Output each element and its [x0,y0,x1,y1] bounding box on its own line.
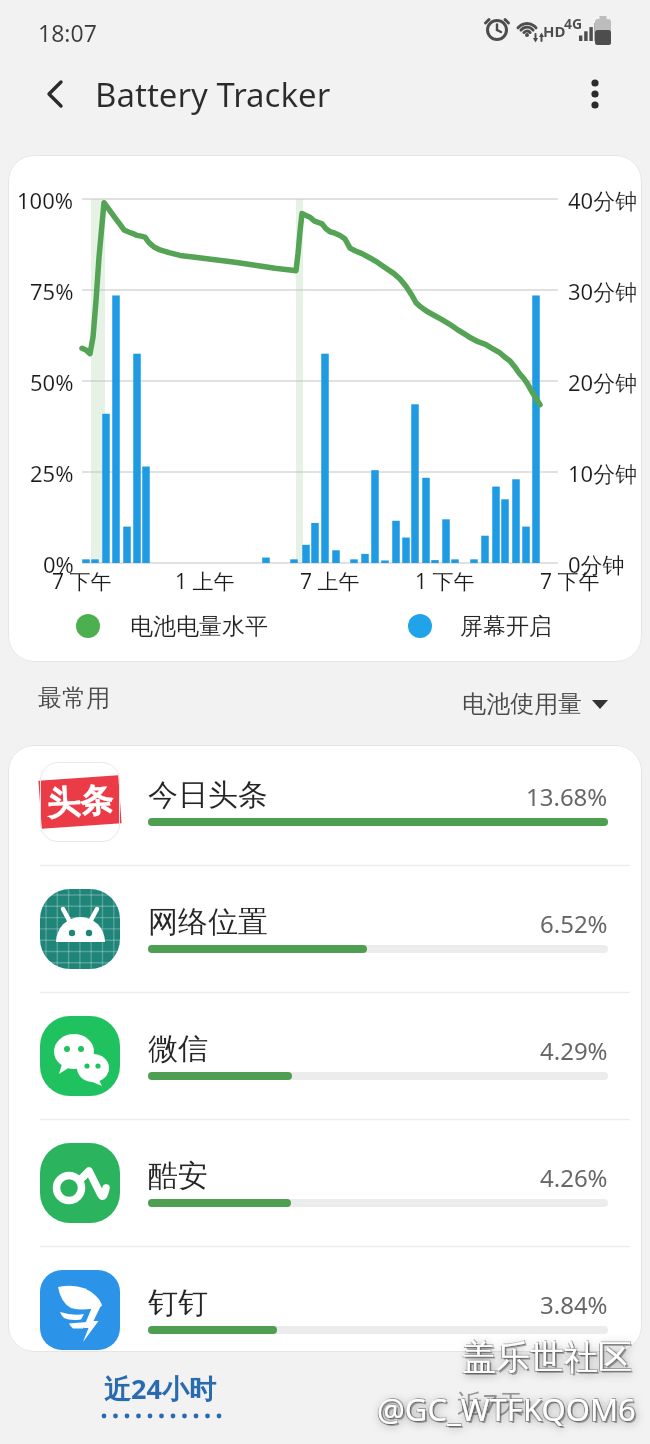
staticText: 4G [564,14,583,33]
staticText: @GC_WTFKQOM6 [378,1387,637,1429]
staticText: 今日头条 [148,776,268,814]
staticText: 0% [43,549,74,577]
staticText: 50% [30,367,74,395]
staticText: 屏幕开启 [460,612,552,641]
staticText: 7 下午 [52,567,112,595]
staticText: 4.29% [540,1034,608,1064]
staticText: 100% [17,185,74,213]
staticText: 盖乐世社区 [461,1337,631,1380]
button[interactable]: 近24小时 [90,1370,230,1436]
staticText: 7 上午 [300,567,360,595]
staticText: 酷安 [148,1157,208,1195]
staticText: 30分钟 [568,276,638,304]
staticText: 头条 [46,779,114,825]
staticText: 最常用 [38,683,110,713]
staticText: @GC_WTFKQOM6 [377,1388,636,1430]
staticText: @GC_WTFKQOM6 [376,1389,635,1431]
button[interactable] [8,1120,642,1246]
staticText: 电池使用量 [462,689,582,719]
staticText: 盖乐世社区 [463,1337,633,1380]
staticText: 75% [30,276,74,304]
button[interactable] [30,69,80,119]
staticText: 盖乐世社区 [462,1336,632,1379]
staticText: 10分钟 [568,458,638,486]
staticText: 近7天 [457,1385,524,1421]
staticText: 1 下午 [415,567,475,595]
staticText: 近24小时 [104,1370,216,1407]
staticText: 网络位置 [148,903,268,941]
staticText: @GC_WTFKQOM6 [378,1389,637,1431]
button[interactable] [570,69,620,119]
staticText: 40分钟 [568,185,638,213]
staticText: HD [543,21,566,41]
staticText: 盖乐世社区 [463,1335,633,1378]
staticText: @GC_WTFKQOM6 [379,1390,638,1432]
staticText: 25% [30,458,74,486]
staticText: 6.52% [540,907,608,937]
staticText: 18:07 [38,17,97,48]
staticText: 1 上午 [175,567,235,595]
staticText: 微信 [148,1030,208,1068]
button[interactable] [8,739,642,865]
button[interactable]: 近7天 [420,1385,560,1440]
button[interactable] [8,1247,642,1373]
staticText: 0分钟 [568,549,625,577]
staticText: 20分钟 [568,367,638,395]
staticText: Battery Tracker [95,72,331,117]
staticText: 盖乐世社区 [464,1338,634,1381]
staticText: 13.68% [526,780,608,810]
staticText: 4.26% [540,1161,608,1191]
staticText: 电池电量水平 [130,612,268,641]
staticText: 7 下午 [540,567,600,595]
staticText: 钉钉 [148,1284,208,1322]
button[interactable]: 电池使用量 [462,689,608,719]
staticText: 3.84% [540,1288,608,1318]
button[interactable] [8,993,642,1119]
button[interactable] [8,866,642,992]
